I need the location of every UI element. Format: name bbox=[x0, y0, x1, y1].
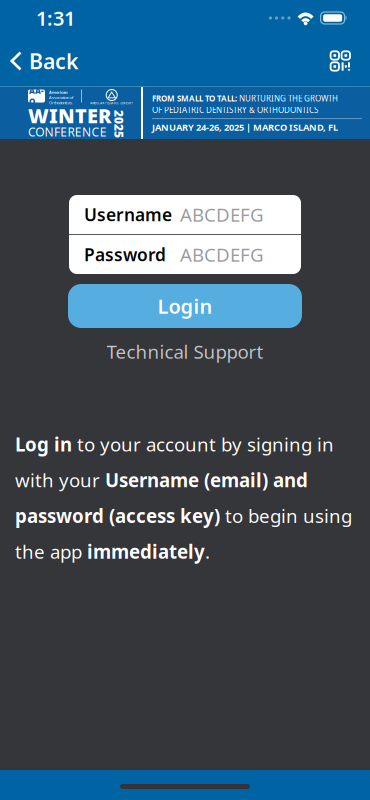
button[interactable]: Password bbox=[69, 235, 301, 274]
staticText: FROM SMALL TO TALL: NURTURING THE GROWTH bbox=[152, 93, 338, 104]
staticText: Orthodontists. bbox=[49, 100, 73, 105]
button[interactable]: Username bbox=[69, 195, 301, 234]
staticText: ABCDEFG bbox=[180, 242, 264, 267]
staticText: Username bbox=[84, 203, 172, 226]
button[interactable]: Technical Support bbox=[106, 339, 263, 364]
staticText: ABCDEFG bbox=[180, 202, 264, 227]
staticText: Association of bbox=[49, 95, 73, 100]
staticText: Technical Support bbox=[106, 339, 263, 364]
staticText: Log in to your account by signing in wit… bbox=[15, 432, 352, 564]
staticText: AAO bbox=[29, 85, 44, 107]
staticText: Back bbox=[29, 47, 79, 75]
staticText: American bbox=[49, 89, 68, 95]
staticText: Login bbox=[157, 293, 212, 319]
staticText: CONFERENCE bbox=[28, 124, 107, 140]
staticText: 1:31 bbox=[36, 5, 75, 31]
staticText: OF PEDIATRIC DENTISTRY & ORTHODONTICS bbox=[152, 105, 318, 115]
staticText: 2025 bbox=[105, 116, 133, 132]
staticText: Password bbox=[84, 243, 166, 266]
button[interactable]: Back bbox=[0, 47, 79, 75]
staticText: AMERICAN PEDIATRIC DENTISTRY bbox=[90, 101, 133, 105]
staticText: WINTER bbox=[28, 102, 112, 129]
staticText: JANUARY 24-26, 2025 | MARCO ISLAND, FL bbox=[152, 121, 338, 133]
button[interactable]: Scan QR Code bbox=[331, 51, 370, 71]
button[interactable]: Login bbox=[68, 284, 302, 328]
